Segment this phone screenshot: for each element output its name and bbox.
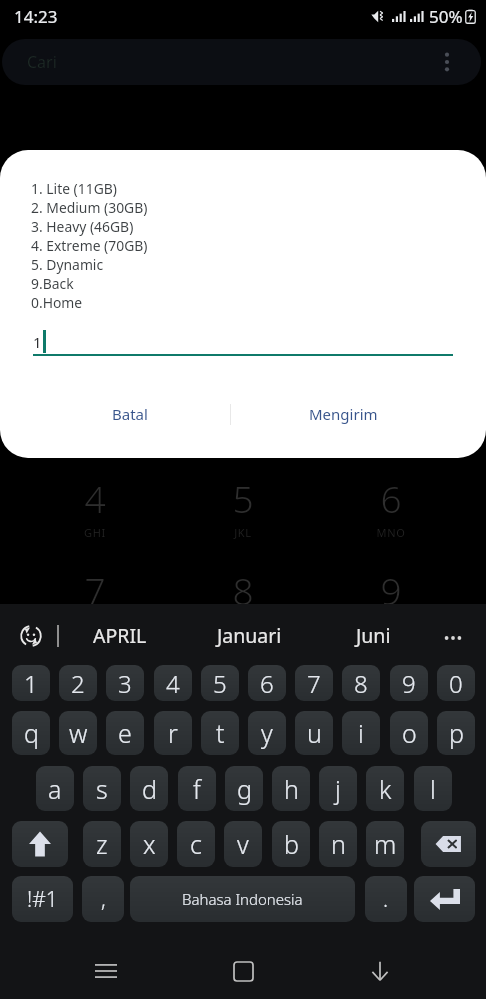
- staticText: 5. Dynamic: [31, 255, 104, 274]
- button[interactable]: v: [224, 821, 262, 867]
- staticText: z: [96, 827, 108, 861]
- staticText: q: [24, 716, 39, 750]
- button[interactable]: More suggestions: [438, 623, 468, 653]
- button[interactable]: Backspace: [421, 821, 476, 867]
- staticText: 0: [449, 667, 463, 700]
- button[interactable]: t: [201, 711, 239, 755]
- button[interactable]: 5: [201, 665, 239, 701]
- button[interactable]: 8: [342, 665, 380, 701]
- button[interactable]: Cari: [2, 39, 481, 85]
- staticText: a: [48, 772, 62, 806]
- staticText: 1: [33, 332, 42, 352]
- button[interactable]: Hide keyboard: [349, 943, 411, 999]
- staticText: r: [168, 716, 178, 750]
- button[interactable]: 2: [59, 665, 97, 701]
- staticText: Mengirim: [309, 404, 378, 424]
- button[interactable]: m: [366, 821, 404, 867]
- staticText: 14:23: [14, 5, 58, 28]
- staticText: 0.Home: [31, 293, 83, 312]
- staticText: APRIL: [93, 622, 147, 649]
- button[interactable]: u: [295, 711, 333, 755]
- button[interactable]: APRIL: [81, 612, 159, 658]
- button[interactable]: 9: [390, 665, 428, 701]
- staticText: 6: [341, 473, 441, 523]
- button[interactable]: Mengirim: [243, 397, 443, 431]
- staticText: y: [261, 716, 273, 750]
- button[interactable]: k: [366, 766, 404, 811]
- button[interactable]: 6: [248, 665, 286, 701]
- staticText: h: [284, 772, 299, 806]
- button[interactable]: 0: [437, 665, 475, 701]
- staticText: 3. Heavy (46GB): [31, 217, 134, 236]
- staticText: x: [143, 827, 156, 861]
- staticText: m: [374, 827, 397, 861]
- button[interactable]: j: [319, 766, 357, 811]
- staticText: n: [331, 827, 346, 861]
- staticText: 6: [260, 667, 274, 700]
- staticText: .: [383, 885, 389, 914]
- staticText: 3: [118, 667, 132, 700]
- button[interactable]: d: [130, 766, 168, 811]
- button[interactable]: More options: [434, 49, 460, 75]
- staticText: u: [307, 716, 322, 750]
- button[interactable]: 1: [12, 665, 50, 701]
- staticText: 9: [402, 667, 416, 700]
- button[interactable]: i: [342, 711, 380, 755]
- staticText: 4: [166, 667, 180, 700]
- button[interactable]: !#1: [12, 876, 73, 922]
- button[interactable]: Bahasa Indonesia: [130, 876, 355, 922]
- staticText: l: [430, 772, 436, 806]
- button[interactable]: s: [83, 766, 121, 811]
- button[interactable]: 7: [295, 665, 333, 701]
- button[interactable]: Januari: [205, 612, 294, 658]
- button[interactable]: e: [106, 711, 144, 755]
- staticText: o: [402, 716, 417, 750]
- button[interactable]: Juni: [344, 612, 403, 658]
- staticText: Cari: [27, 51, 57, 73]
- staticText: Januari: [217, 622, 282, 649]
- staticText: Batal: [112, 404, 148, 424]
- button[interactable]: n: [319, 821, 357, 867]
- button[interactable]: y: [248, 711, 286, 755]
- staticText: k: [379, 772, 392, 806]
- button[interactable]: f: [178, 766, 216, 811]
- staticText: s: [96, 772, 108, 806]
- button[interactable]: p: [437, 711, 475, 755]
- button[interactable]: 4: [154, 665, 192, 701]
- button[interactable]: x: [130, 821, 168, 867]
- button[interactable]: g: [225, 766, 263, 811]
- staticText: GHI: [45, 525, 145, 540]
- staticText: d: [142, 772, 157, 806]
- staticText: 8: [354, 667, 368, 700]
- button[interactable]: Shift: [12, 821, 68, 867]
- button[interactable]: ,: [82, 876, 124, 922]
- staticText: 1: [24, 667, 38, 700]
- button[interactable]: r: [154, 711, 192, 755]
- staticText: 4. Extreme (70GB): [31, 236, 148, 255]
- button[interactable]: .: [365, 876, 407, 922]
- button[interactable]: Recents: [75, 943, 137, 999]
- button[interactable]: o: [390, 711, 428, 755]
- staticText: g: [237, 772, 252, 806]
- button[interactable]: c: [177, 821, 215, 867]
- button[interactable]: 3: [106, 665, 144, 701]
- button[interactable]: Home: [212, 943, 274, 999]
- button[interactable]: h: [272, 766, 310, 811]
- button[interactable]: Emoji: [18, 623, 44, 649]
- button[interactable]: l: [414, 766, 452, 811]
- staticText: 9: [341, 565, 441, 615]
- staticText: Juni: [356, 622, 391, 649]
- button[interactable]: q: [12, 711, 50, 755]
- staticText: p: [449, 716, 464, 750]
- button[interactable]: Batal: [30, 397, 230, 431]
- button[interactable]: Enter: [414, 876, 475, 922]
- button[interactable]: a: [36, 766, 74, 811]
- staticText: !#1: [27, 885, 58, 914]
- button[interactable]: w: [59, 711, 97, 755]
- button[interactable]: z: [83, 821, 121, 867]
- staticText: 2: [71, 667, 85, 700]
- staticText: 1. Lite (11GB): [31, 179, 117, 198]
- button[interactable]: b: [272, 821, 310, 867]
- staticText: 50%: [429, 5, 463, 28]
- staticText: ,: [101, 885, 106, 914]
